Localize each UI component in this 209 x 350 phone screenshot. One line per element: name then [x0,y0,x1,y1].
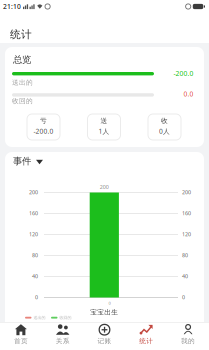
staticText: 200 [182,189,191,196]
staticText: 40 [182,273,188,280]
staticText: 200 [100,183,109,191]
button[interactable]: 首页 [0,322,42,350]
staticText: 120 [182,231,191,238]
staticText: 我的 [181,337,195,345]
staticText: 40 [32,273,38,280]
staticText: 160 [182,210,191,217]
staticText: 总览 [13,54,31,65]
button[interactable]: 我的 [167,322,209,350]
staticText: 0.0 [183,90,193,98]
staticText: -200.0 [33,127,53,136]
staticText: 0 [182,294,185,301]
staticText: 80 [32,252,38,259]
staticText: 120 [29,231,38,238]
staticText: 事件 [13,155,31,167]
button[interactable]: 记账 [84,322,125,350]
staticText: 1人 [98,127,109,136]
staticText: 200 [29,189,38,196]
staticText: 80 [182,252,188,259]
staticText: 送 [100,117,107,125]
staticText: 0人 [159,127,170,136]
staticText: 统计 [139,337,153,345]
staticText: 宝宝出生 [90,308,118,316]
staticText: 统计 [10,28,32,41]
staticText: 首页 [14,337,28,345]
staticText: 送出的 [12,78,33,87]
staticText: 收回的 [12,97,33,105]
staticText: -200.0 [173,69,193,78]
button[interactable]: 事件 [13,155,43,167]
staticText: 亏 [40,117,47,125]
staticText: 收回的 [59,315,71,320]
button[interactable]: 统计 [125,322,167,350]
staticText: 关系 [56,337,70,345]
button[interactable]: 关系 [42,322,84,350]
staticText: 送出的 [33,315,45,320]
staticText: 收 [161,117,168,125]
staticText: 0 [35,294,38,301]
staticText: 记账 [97,337,111,345]
staticText: 160 [29,210,38,217]
staticText: 0 [108,300,110,306]
staticText: 21:10 [3,2,21,11]
